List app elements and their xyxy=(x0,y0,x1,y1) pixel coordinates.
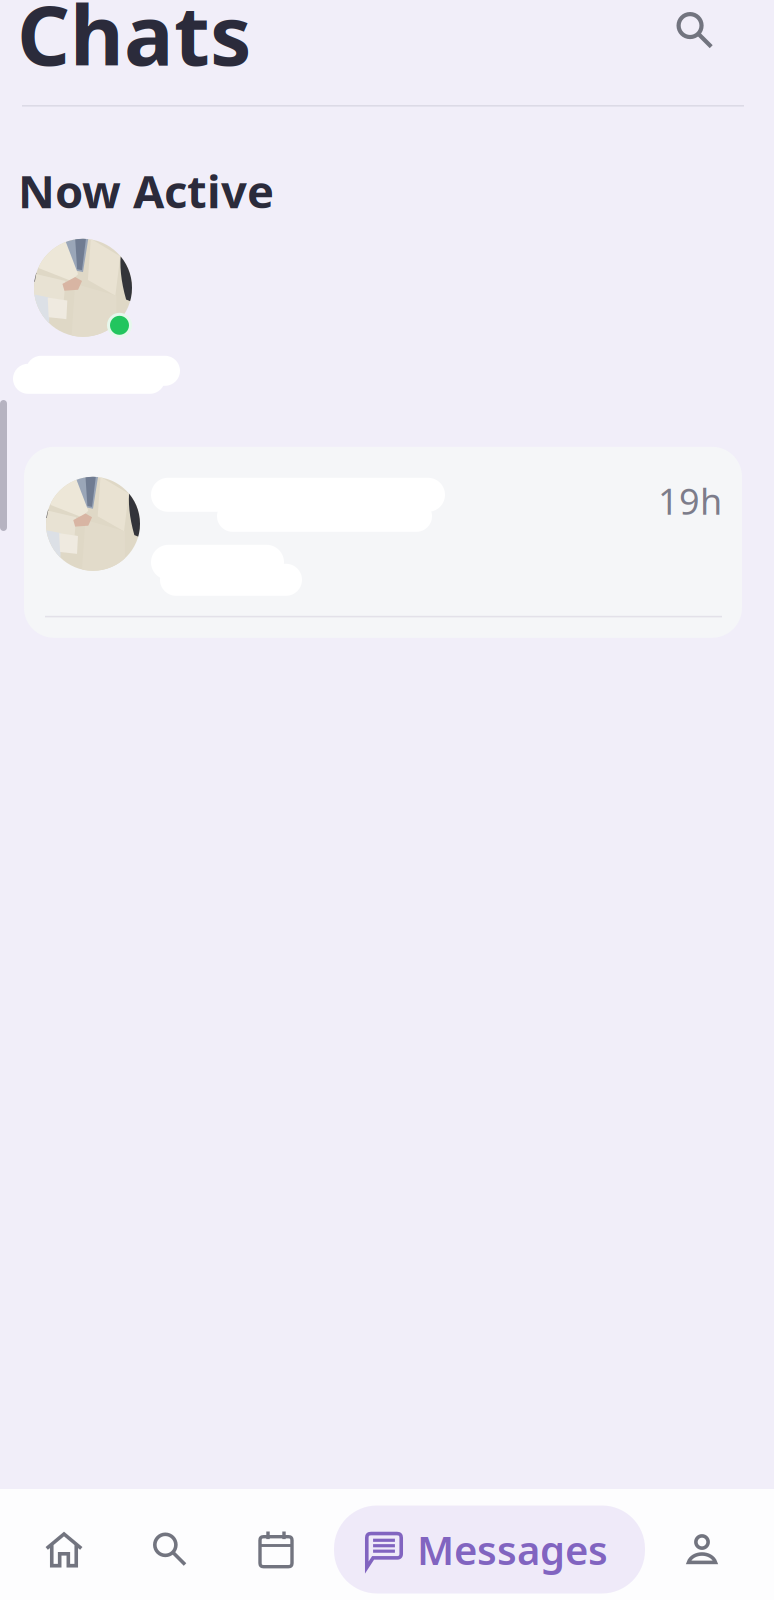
button[interactable]: Search xyxy=(663,1,727,65)
staticText: Chats xyxy=(17,0,251,88)
button[interactable]: Messages xyxy=(334,1505,645,1593)
staticText: 19h xyxy=(658,477,722,525)
button[interactable]: Search xyxy=(125,1494,215,1600)
button[interactable]: Calendar xyxy=(231,1494,321,1600)
button[interactable]: Home xyxy=(19,1494,109,1600)
staticText: Messages xyxy=(417,1523,608,1576)
button[interactable]: Profile xyxy=(657,1494,747,1600)
staticText: Now Active xyxy=(18,161,274,221)
